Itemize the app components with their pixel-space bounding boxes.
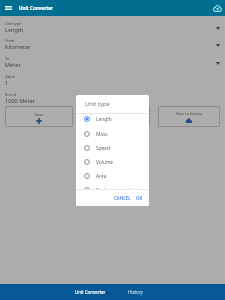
button[interactable]: Mass xyxy=(76,127,149,141)
staticText: OK xyxy=(136,195,143,201)
button[interactable]: Open navigation drawer xyxy=(3,3,13,13)
button[interactable]: To xyxy=(0,56,225,74)
staticText: To xyxy=(5,56,10,61)
button[interactable]: Length xyxy=(76,114,149,126)
button[interactable]: Volume xyxy=(76,155,149,169)
staticText: Length xyxy=(96,116,112,123)
button[interactable]: Speed xyxy=(76,141,149,155)
staticText: CANCEL xyxy=(114,195,131,201)
button[interactable]: Save to history xyxy=(158,106,220,127)
staticText: Speed xyxy=(96,145,110,152)
staticText: Meter xyxy=(5,61,21,69)
button[interactable]: CANCEL xyxy=(112,193,133,203)
button[interactable]: OK xyxy=(134,193,145,203)
button[interactable]: Result xyxy=(0,92,225,110)
staticText: Length xyxy=(5,26,24,34)
button[interactable]: Fuel consumption xyxy=(76,183,149,190)
button[interactable]: Save xyxy=(5,106,73,127)
button[interactable]: Unit type xyxy=(0,21,225,39)
staticText: Unit type xyxy=(85,100,110,108)
staticText: 1 xyxy=(5,79,9,87)
staticText: Unit type xyxy=(5,21,22,26)
staticText: Kilometer xyxy=(5,43,31,51)
staticText: Result xyxy=(5,92,17,97)
staticText: 1000 Meter xyxy=(5,97,35,105)
staticText: From xyxy=(5,38,15,43)
button[interactable]: History xyxy=(113,284,158,300)
staticText: History xyxy=(128,289,143,295)
staticText: Area xyxy=(96,173,107,180)
staticText: Mass xyxy=(96,131,108,138)
staticText: Unit Converter xyxy=(19,5,54,11)
button[interactable]: Sync to cloud xyxy=(212,3,223,14)
button[interactable]: Value xyxy=(0,74,225,92)
button[interactable]: From xyxy=(0,38,225,56)
button[interactable]: Area xyxy=(76,169,149,183)
staticText: Fuel consumption xyxy=(96,187,137,190)
staticText: Reset xyxy=(111,112,121,117)
staticText: Unit Converter xyxy=(75,289,106,295)
staticText: Save xyxy=(35,112,44,117)
staticText: Save to history xyxy=(176,111,203,116)
button[interactable]: Reset xyxy=(82,106,150,127)
button[interactable]: Unit Converter xyxy=(68,284,113,300)
staticText: Volume xyxy=(96,159,114,166)
staticText: Value xyxy=(5,74,15,79)
